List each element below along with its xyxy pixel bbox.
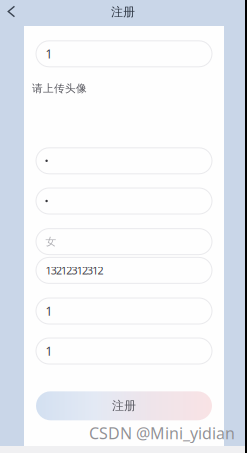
button[interactable]: 13212312312 (36, 257, 212, 283)
staticText: 1 (45, 303, 52, 319)
button[interactable]: Password (36, 188, 212, 214)
staticText: CSDN @Mini_yidian (89, 422, 235, 444)
staticText: 注册 (112, 398, 136, 413)
button[interactable]: 1 (36, 298, 212, 324)
button[interactable]: 注册 (36, 391, 212, 420)
button[interactable]: 女 (36, 229, 212, 255)
staticText: 1 (45, 46, 52, 62)
staticText: 女 (45, 235, 56, 248)
button[interactable]: 1 (36, 41, 212, 67)
button[interactable]: Password (36, 148, 212, 174)
button[interactable]: 1 (36, 338, 212, 364)
staticText: 请上传头像 (32, 82, 87, 95)
staticText: 注册 (111, 5, 135, 19)
button[interactable]: Back (0, 0, 22, 22)
staticText: 1 (45, 343, 52, 359)
staticText: 13212312312 (45, 263, 103, 277)
